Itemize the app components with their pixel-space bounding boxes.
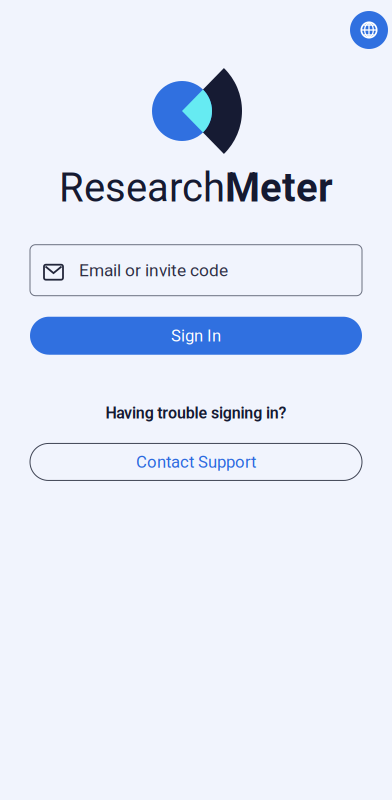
button[interactable]: Sign In: [30, 317, 362, 355]
staticText: Having trouble signing in?: [105, 404, 287, 422]
staticText: Email or invite code: [79, 260, 228, 280]
button[interactable]: Contact Support: [30, 443, 362, 480]
staticText: ResearchMeter: [59, 165, 333, 211]
staticText: Contact Support: [136, 452, 256, 472]
button[interactable]: Change language: [350, 11, 388, 49]
staticText: Sign In: [171, 326, 221, 345]
